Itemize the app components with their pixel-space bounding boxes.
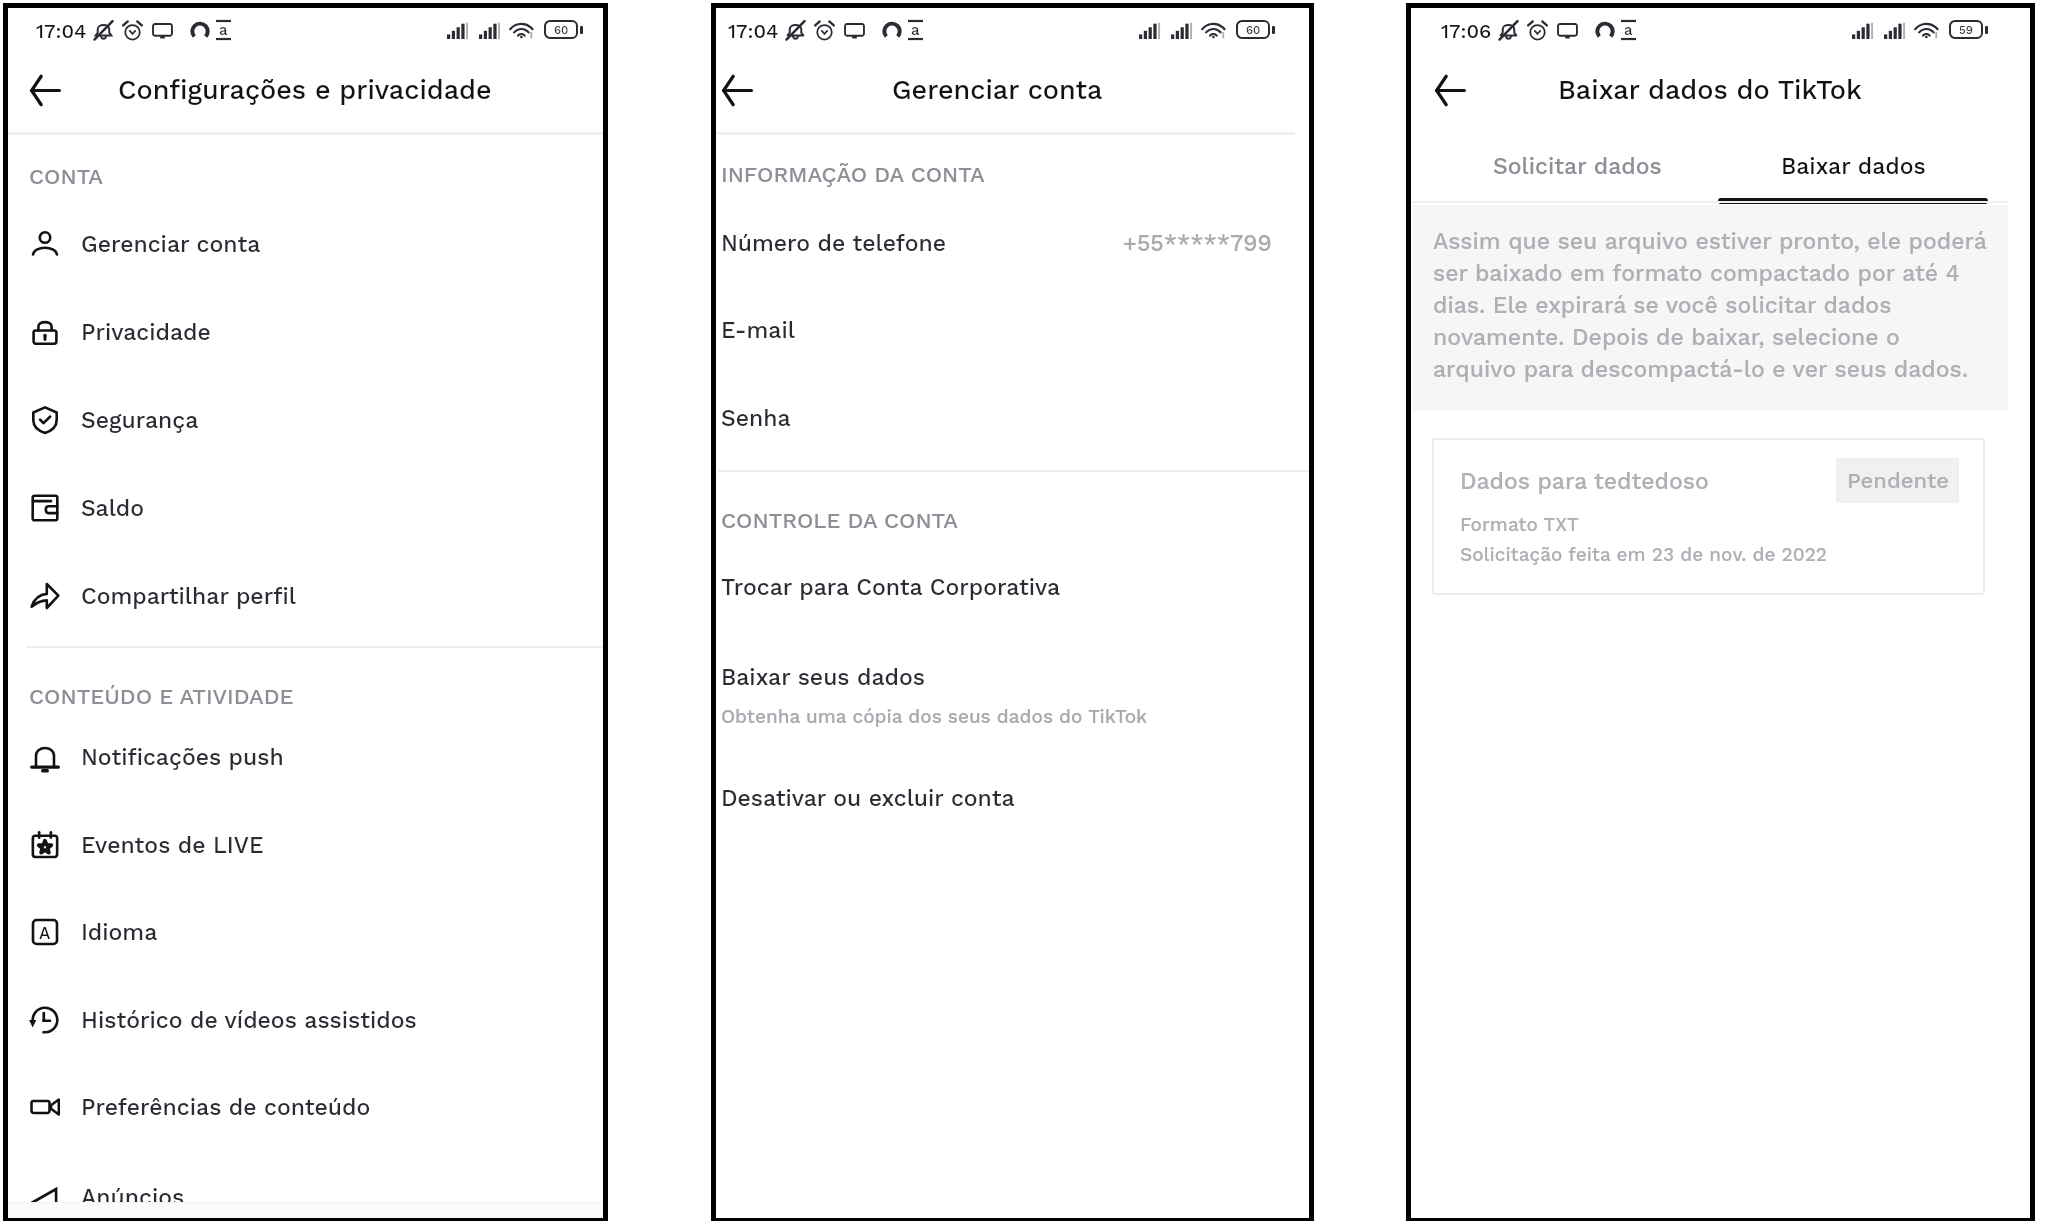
- staticText: Anúncios: [81, 1184, 185, 1211]
- staticText: Configurações e privacidade: [118, 74, 492, 106]
- staticText: INFORMAÇÃO DA CONTA: [721, 162, 985, 188]
- button[interactable]: Privacidade: [7, 288, 603, 376]
- staticText: A: [39, 923, 51, 943]
- button[interactable]: Voltar: [1423, 63, 1477, 117]
- staticText: Baixar seus dados: [721, 664, 925, 691]
- staticText: Assim que seu arquivo estiver pronto, el…: [1433, 228, 1987, 383]
- staticText: Solicitação feita em 23 de nov. de 2022: [1460, 543, 1828, 565]
- button[interactable]: Número de telefone: [711, 199, 1295, 287]
- staticText: 60: [1246, 23, 1261, 36]
- staticText: Pendente: [1847, 468, 1949, 494]
- staticText: 17:06: [1441, 19, 1492, 42]
- staticText: Eventos de LIVE: [81, 832, 264, 859]
- staticText: Saldo: [81, 495, 145, 522]
- button[interactable]: Eventos de LIVE: [7, 801, 603, 889]
- button[interactable]: Segurança: [7, 376, 603, 464]
- staticText: +55*****799: [1123, 230, 1272, 257]
- button[interactable]: Trocar para Conta Corporativa: [711, 543, 1295, 631]
- button[interactable]: Baixar seus dados: [711, 636, 1295, 756]
- staticText: Formato TXT: [1460, 513, 1579, 535]
- staticText: Gerenciar conta: [81, 231, 261, 258]
- staticText: Preferências de conteúdo: [81, 1094, 371, 1121]
- button[interactable]: Notificações push: [7, 713, 603, 801]
- staticText: CONTA: [29, 164, 103, 190]
- button[interactable]: Baixar dados: [1718, 133, 1988, 199]
- staticText: Baixar dados: [1781, 153, 1926, 180]
- button[interactable]: Solicitar dados: [1442, 133, 1712, 199]
- staticText: 17:04: [728, 19, 779, 42]
- staticText: Segurança: [81, 407, 199, 434]
- staticText: a: [219, 21, 228, 39]
- staticText: Desativar ou excluir conta: [721, 785, 1015, 812]
- staticText: a: [1624, 21, 1633, 39]
- staticText: Compartilhar perfil: [81, 583, 296, 610]
- button[interactable]: Voltar: [18, 63, 72, 117]
- staticText: 17:04: [36, 19, 87, 42]
- staticText: E-mail: [721, 317, 795, 344]
- button[interactable]: Voltar: [711, 63, 764, 117]
- staticText: a: [911, 21, 920, 39]
- button[interactable]: Preferências de conteúdo: [7, 1063, 603, 1151]
- button[interactable]: Gerenciar conta: [7, 200, 603, 288]
- staticText: Dados para tedtedoso: [1460, 468, 1709, 495]
- staticText: Trocar para Conta Corporativa: [721, 574, 1061, 601]
- staticText: Gerenciar conta: [892, 74, 1103, 106]
- staticText: Idioma: [81, 919, 158, 946]
- staticText: 60: [554, 23, 569, 36]
- staticText: Histórico de vídeos assistidos: [81, 1007, 417, 1034]
- button[interactable]: Compartilhar perfil: [7, 552, 603, 640]
- button[interactable]: Pendente: [1836, 458, 1959, 503]
- button[interactable]: Senha: [711, 374, 1295, 462]
- button[interactable]: E-mail: [711, 286, 1295, 374]
- staticText: Baixar dados do TikTok: [1558, 74, 1862, 106]
- staticText: Notificações push: [81, 744, 284, 771]
- button[interactable]: Desativar ou excluir conta: [711, 754, 1295, 842]
- staticText: 59: [1959, 23, 1973, 36]
- button[interactable]: Anúncios: [7, 1153, 603, 1221]
- staticText: Obtenha uma cópia dos seus dados do TikT…: [721, 705, 1148, 727]
- staticText: Senha: [721, 405, 791, 432]
- button[interactable]: Saldo: [7, 464, 603, 552]
- button[interactable]: Histórico de vídeos assistidos: [7, 976, 603, 1064]
- staticText: Solicitar dados: [1493, 153, 1662, 180]
- staticText: CONTROLE DA CONTA: [721, 508, 958, 534]
- button[interactable]: A: [7, 888, 603, 976]
- staticText: CONTEÚDO E ATIVIDADE: [29, 684, 294, 710]
- staticText: Número de telefone: [721, 230, 947, 257]
- staticText: Privacidade: [81, 319, 211, 346]
